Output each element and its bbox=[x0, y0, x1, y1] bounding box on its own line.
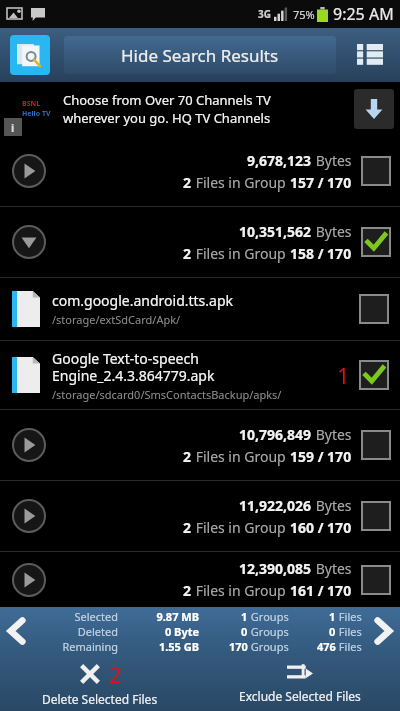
staticText: /storage/sdcard0/SmsContactsBackup/apks/ bbox=[52, 387, 282, 402]
staticText: 9,678,123 bbox=[247, 151, 312, 170]
button[interactable]: Expand group bbox=[10, 561, 48, 599]
staticText: Files bbox=[336, 609, 362, 624]
staticText: Bytes bbox=[312, 559, 352, 578]
staticText: wherever you go. HQ TV Channels bbox=[63, 109, 271, 127]
staticText: 9.87 MB bbox=[126, 609, 199, 624]
staticText: 170 bbox=[229, 639, 248, 654]
button[interactable]: Google Text-to-speech Engine_2.4.3.86477… bbox=[0, 341, 400, 409]
staticText: 158 / 170 bbox=[290, 244, 352, 263]
button[interactable]: App icon bbox=[10, 35, 50, 75]
staticText: Selected bbox=[34, 609, 118, 624]
button[interactable]: Select file bbox=[360, 361, 388, 389]
staticText: 1.55 GB bbox=[126, 639, 199, 654]
staticText: Hide Search Results bbox=[121, 44, 279, 67]
staticText: 1 bbox=[329, 609, 336, 624]
button[interactable]: Hide Search Results bbox=[64, 36, 336, 74]
staticText: Bytes bbox=[312, 151, 352, 170]
button[interactable]: Select group bbox=[362, 157, 390, 185]
button[interactable]: Select group bbox=[362, 431, 390, 459]
staticText: com.google.android.tts.apk bbox=[52, 291, 234, 310]
staticText: Delete Selected Files bbox=[42, 691, 158, 707]
staticText: Bytes bbox=[312, 496, 352, 515]
button[interactable]: Expand group bbox=[10, 497, 48, 535]
staticText: 10,796,849 bbox=[239, 425, 312, 444]
staticText: Files in Group bbox=[192, 581, 290, 600]
staticText: Files bbox=[336, 624, 362, 639]
staticText: Exclude Selected Files bbox=[239, 688, 361, 704]
staticText: Choose from Over 70 Channels TV bbox=[63, 91, 271, 109]
staticText: Files in Group bbox=[192, 518, 290, 537]
staticText: Hello TV bbox=[22, 109, 51, 119]
button[interactable]: Collapse group bbox=[0, 207, 400, 277]
button[interactable]: Expand group bbox=[0, 136, 400, 206]
button[interactable]: Next bbox=[366, 607, 400, 655]
staticText: 157 / 170 bbox=[290, 173, 352, 192]
staticText: Files in Group bbox=[192, 447, 290, 466]
staticText: Files bbox=[336, 639, 362, 654]
staticText: Bytes bbox=[312, 425, 352, 444]
staticText: 2 bbox=[183, 581, 192, 600]
staticText: Groups bbox=[248, 609, 289, 624]
button[interactable]: Expand group bbox=[10, 426, 48, 464]
staticText: 75% bbox=[293, 7, 315, 22]
staticText: 12,390,085 bbox=[239, 559, 312, 578]
button[interactable]: 2 bbox=[0, 655, 200, 711]
button[interactable]: com.google.android.tts.apk bbox=[0, 278, 400, 340]
staticText: 3G bbox=[258, 7, 271, 21]
staticText: 0 bbox=[241, 624, 248, 639]
staticText: 1 bbox=[241, 609, 248, 624]
staticText: 11,922,026 bbox=[239, 496, 312, 515]
staticText: Deleted bbox=[34, 624, 118, 639]
staticText: 9:25 AM bbox=[333, 3, 394, 25]
staticText: Groups bbox=[248, 639, 289, 654]
staticText: 161 / 170 bbox=[290, 581, 352, 600]
button[interactable]: Select group bbox=[362, 566, 390, 594]
staticText: 2 bbox=[183, 173, 192, 192]
staticText: 0 Byte bbox=[126, 624, 199, 639]
staticText: 10,351,562 bbox=[239, 222, 312, 241]
staticText: /storage/extSdCard/Apk/ bbox=[52, 312, 181, 327]
button[interactable]: Expand group bbox=[10, 152, 48, 190]
staticText: 160 / 170 bbox=[290, 518, 352, 537]
staticText: Files in Group bbox=[192, 173, 290, 192]
button[interactable]: Previous bbox=[0, 607, 34, 655]
staticText: i bbox=[11, 120, 15, 135]
staticText: 2 bbox=[183, 244, 192, 263]
staticText: Google Text-to-speech Engine_2.4.3.86477… bbox=[52, 349, 215, 385]
staticText: 476 bbox=[317, 639, 336, 654]
button[interactable]: List options bbox=[350, 35, 390, 75]
button[interactable]: Expand group bbox=[0, 410, 400, 480]
staticText: 2 bbox=[183, 447, 192, 466]
staticText: Groups bbox=[248, 624, 289, 639]
staticText: 2 Files in Group bbox=[203, 114, 301, 132]
staticText: 0 bbox=[329, 624, 336, 639]
button[interactable]: Exclude Selected Files bbox=[200, 655, 400, 711]
button[interactable]: Expand group bbox=[0, 481, 400, 551]
staticText: 156 / 170 bbox=[301, 114, 358, 132]
staticText: Bytes bbox=[312, 222, 352, 241]
button[interactable]: Download bbox=[354, 89, 394, 129]
staticText: 2 bbox=[109, 659, 122, 689]
button[interactable]: Select group bbox=[362, 502, 390, 530]
staticText: 2 bbox=[183, 518, 192, 537]
staticText: BSNL bbox=[22, 99, 41, 109]
button[interactable]: BSNL bbox=[0, 82, 400, 136]
staticText: 1 bbox=[337, 360, 350, 390]
button[interactable]: Collapse group bbox=[10, 223, 48, 261]
button[interactable]: Select group bbox=[362, 228, 390, 256]
button[interactable]: Select file bbox=[360, 295, 388, 323]
staticText: Remaining bbox=[34, 639, 118, 654]
button[interactable]: Expand group bbox=[0, 552, 400, 607]
staticText: 159 / 170 bbox=[290, 447, 352, 466]
staticText: Files in Group bbox=[192, 244, 290, 263]
